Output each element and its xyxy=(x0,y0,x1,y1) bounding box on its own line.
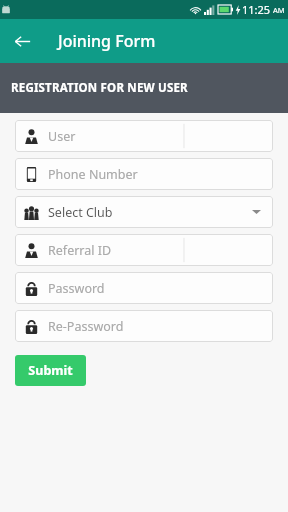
button[interactable]: Re-Password xyxy=(15,310,273,342)
staticText: Joining Form xyxy=(58,30,156,52)
button[interactable]: User xyxy=(15,120,273,152)
staticText: REGISTRATION FOR NEW USER xyxy=(11,80,188,96)
staticText: Select Club xyxy=(48,204,113,221)
staticText: AM xyxy=(273,5,285,15)
button[interactable]: Submit xyxy=(15,355,86,386)
staticText: Referral ID xyxy=(48,242,112,259)
staticText: Re-Password xyxy=(48,318,124,335)
button[interactable]: Back xyxy=(9,28,35,54)
button[interactable]: Select Club xyxy=(15,196,273,228)
staticText: Password xyxy=(48,280,105,297)
button[interactable]: Phone Number xyxy=(15,158,273,190)
staticText: Phone Number xyxy=(48,166,138,183)
staticText: 11:25 xyxy=(242,2,271,17)
button[interactable]: Password xyxy=(15,272,273,304)
staticText: User xyxy=(48,128,76,145)
staticText: Submit xyxy=(28,362,73,379)
button[interactable]: Referral ID xyxy=(15,234,273,266)
